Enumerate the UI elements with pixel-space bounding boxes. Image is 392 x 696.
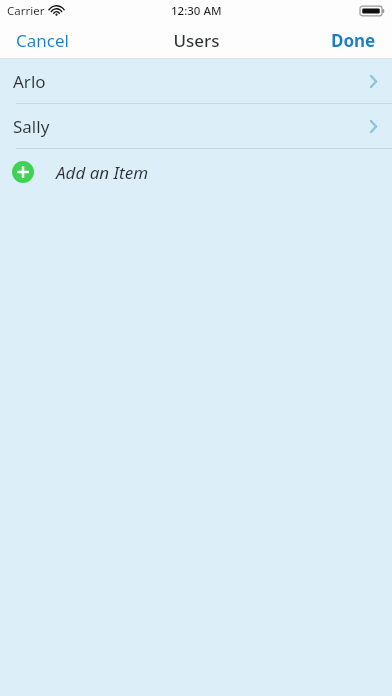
staticText: Arlo	[13, 70, 46, 93]
staticText: Users	[173, 29, 220, 52]
staticText: Cancel	[16, 29, 69, 52]
staticText: Carrier	[7, 3, 45, 19]
button[interactable]: Sally	[0, 104, 392, 148]
button[interactable]: Add an Item	[0, 149, 392, 195]
button[interactable]: Arlo	[0, 59, 392, 103]
staticText: Done	[331, 29, 376, 52]
staticText: 12:30 AM	[171, 3, 222, 19]
button[interactable]: Cancel	[0, 23, 85, 58]
staticText: Add an Item	[56, 161, 149, 184]
staticText: Sally	[13, 115, 50, 138]
button[interactable]: Done	[315, 23, 392, 58]
